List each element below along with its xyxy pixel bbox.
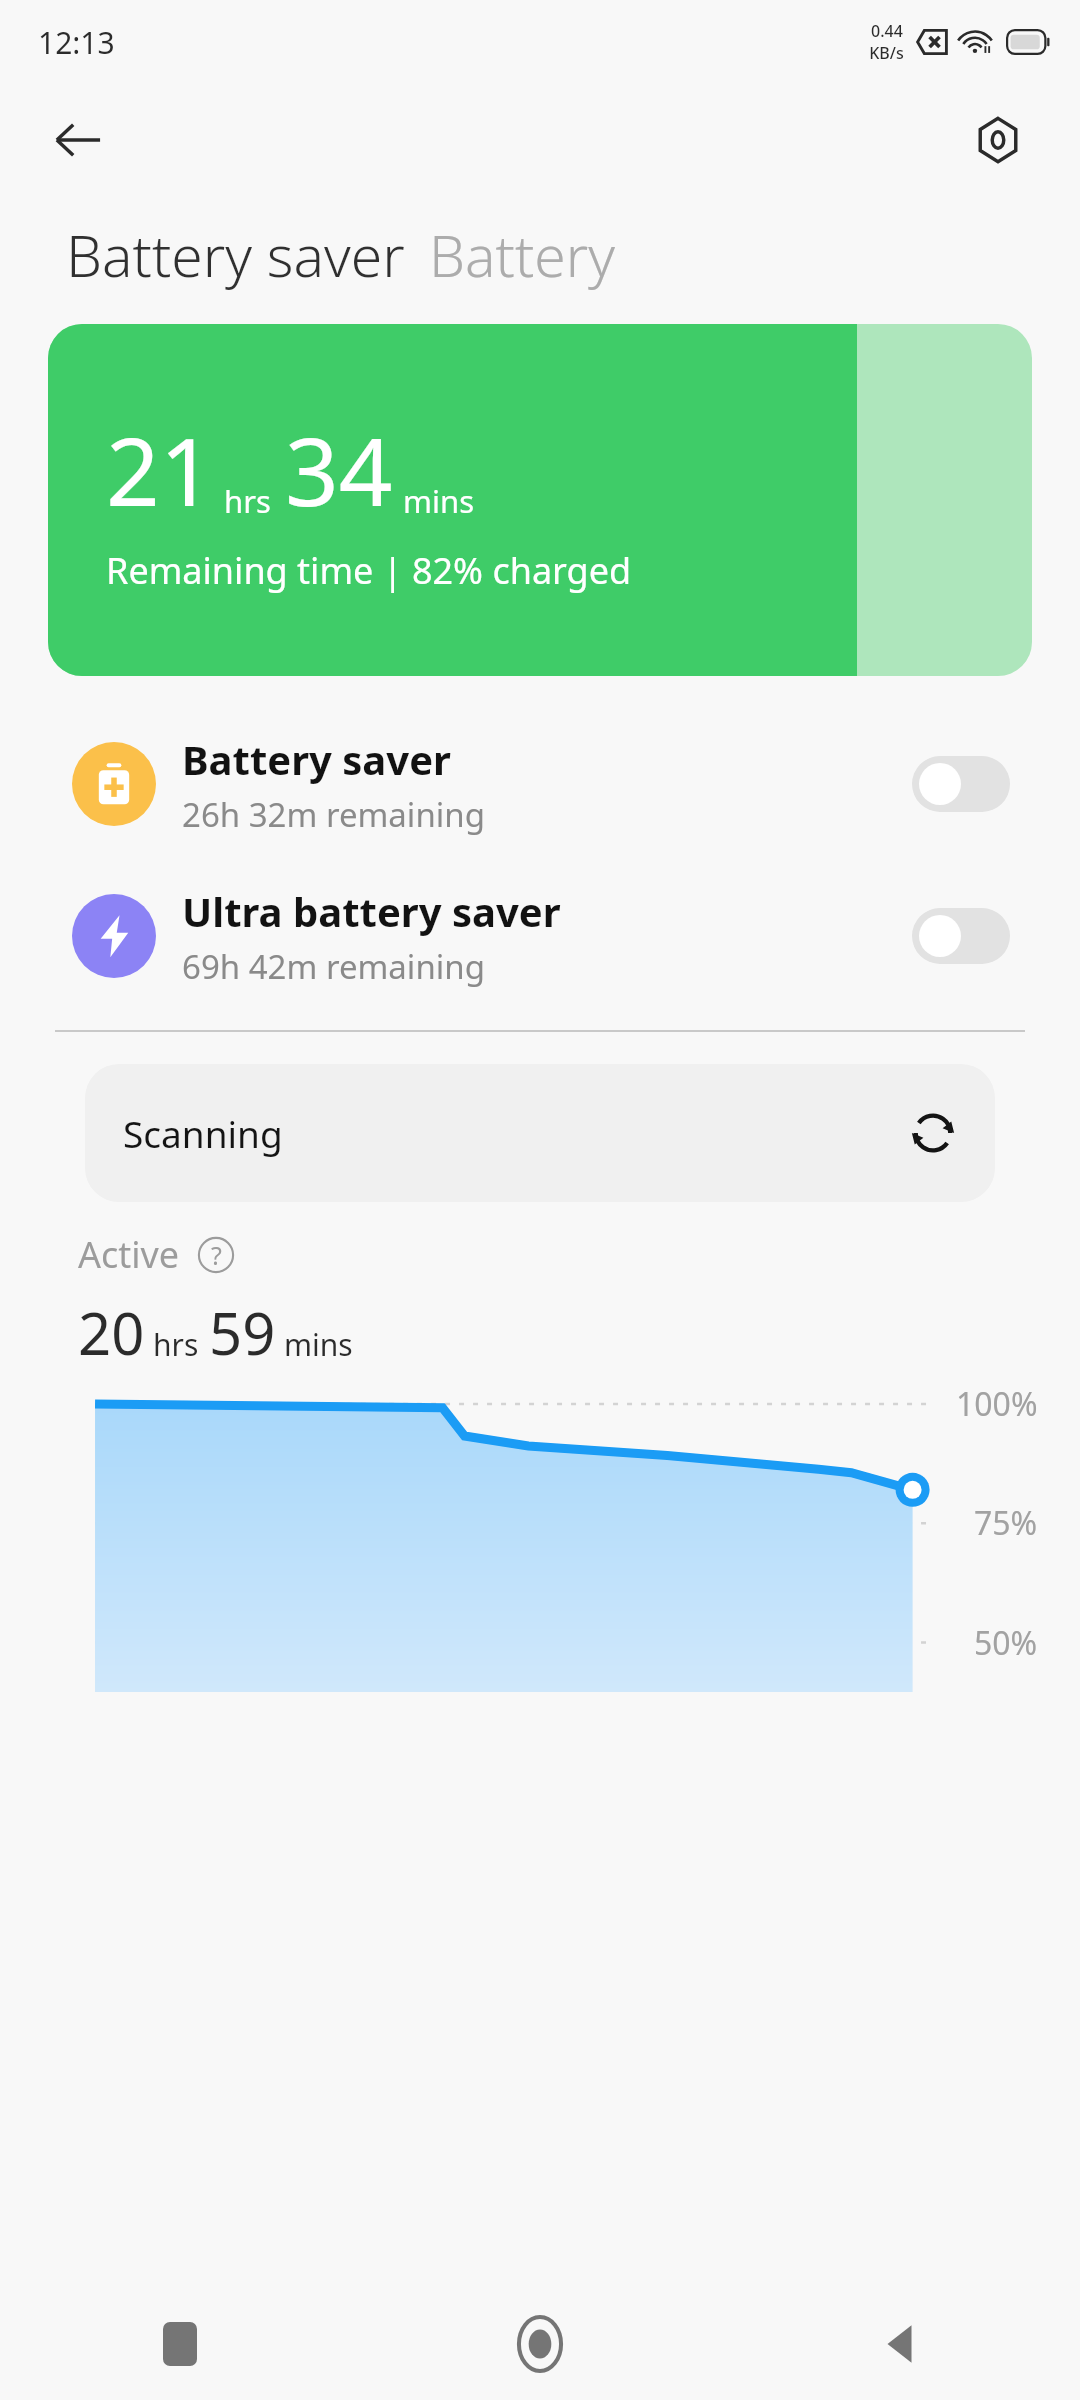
staticText: Battery saver — [182, 732, 451, 786]
staticText: 34 — [285, 406, 393, 534]
staticText: Scanning — [123, 1108, 909, 1158]
button[interactable]: Home — [360, 2288, 720, 2400]
staticText: KB/s — [869, 42, 904, 64]
button[interactable]: Scanning — [85, 1064, 995, 1202]
button[interactable]: Recent apps — [0, 2288, 360, 2400]
button[interactable]: Ultra battery saver — [0, 870, 1080, 1002]
staticText: 69h 42m remaining — [182, 944, 485, 989]
staticText: mins — [284, 1324, 353, 1365]
button[interactable]: 21 — [48, 324, 1032, 676]
button[interactable]: Back — [40, 102, 116, 178]
staticText: Battery — [429, 216, 615, 294]
staticText: 21 — [106, 406, 214, 534]
staticText: ? — [211, 1238, 222, 1272]
button[interactable]: Help — [194, 1233, 238, 1277]
staticText: 75% — [974, 1501, 1038, 1545]
staticText: Ultra battery saver — [182, 884, 561, 938]
staticText: Battery saver — [66, 216, 405, 294]
button[interactable]: Battery saver — [0, 718, 1080, 850]
button[interactable]: Battery — [429, 216, 615, 294]
button[interactable]: Toggle off — [912, 908, 1010, 964]
button[interactable]: Toggle off — [912, 756, 1010, 812]
staticText: hrs — [153, 1324, 199, 1365]
staticText: 12:13 — [38, 22, 115, 63]
button[interactable]: Battery saver — [66, 216, 405, 294]
staticText: Active — [78, 1230, 180, 1279]
staticText: 100% — [956, 1382, 1038, 1426]
staticText: 26h 32m remaining — [182, 792, 485, 837]
staticText: 59 — [209, 1293, 276, 1372]
staticText: hrs — [224, 480, 271, 522]
staticText: Remaining time | 82% charged — [106, 546, 632, 595]
staticText: mins — [403, 480, 474, 522]
button[interactable]: Settings — [960, 102, 1036, 178]
staticText: 20 — [78, 1293, 145, 1372]
button[interactable]: Back — [720, 2288, 1080, 2400]
staticText: 50% — [974, 1621, 1038, 1665]
staticText: 0.44 — [871, 20, 903, 42]
